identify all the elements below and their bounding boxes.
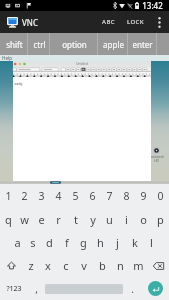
staticText: f <box>65 235 69 250</box>
button[interactable]: 1 <box>0 184 16 208</box>
button[interactable]: u <box>101 208 118 231</box>
button[interactable]: More options <box>152 11 167 33</box>
button[interactable]: 0 <box>152 184 169 208</box>
staticText: LOCK <box>127 18 144 26</box>
button[interactable]: 2 <box>16 184 33 208</box>
button[interactable]: r <box>50 208 67 231</box>
button[interactable]: 3 <box>33 184 50 208</box>
staticText: Untitled <box>76 62 88 66</box>
staticText: e <box>38 212 45 227</box>
staticText: 5 <box>72 189 79 203</box>
button[interactable]: d <box>41 231 58 254</box>
staticText: HD <box>154 159 159 163</box>
staticText: enter <box>132 39 153 50</box>
button[interactable]: k <box>126 231 143 254</box>
staticText: Help <box>2 55 12 61</box>
staticText: l <box>150 235 153 250</box>
button[interactable]: b <box>93 254 111 277</box>
staticText: x <box>45 258 51 273</box>
staticText: 8 <box>123 189 130 203</box>
staticText: 2 <box>21 189 28 203</box>
staticText: i <box>125 212 128 227</box>
button[interactable]: f <box>58 231 75 254</box>
button[interactable]: 8 <box>118 184 135 208</box>
button[interactable]: a <box>9 231 25 254</box>
staticText: p <box>157 212 164 227</box>
button[interactable]: option <box>50 33 98 55</box>
staticText: 1 <box>5 189 12 203</box>
button[interactable]: w <box>16 208 33 231</box>
button[interactable]: m <box>129 254 147 277</box>
button[interactable]: c <box>57 254 75 277</box>
button[interactable]: , <box>27 277 45 300</box>
button[interactable]: o <box>135 208 152 231</box>
staticText: u <box>106 212 113 227</box>
button[interactable]: g <box>75 231 92 254</box>
button[interactable]: 5 <box>67 184 84 208</box>
staticText: g <box>80 235 87 250</box>
staticText: w <box>20 212 29 227</box>
button[interactable]: x <box>39 254 57 277</box>
button[interactable]: v <box>75 254 93 277</box>
button[interactable]: LOCK <box>124 13 147 31</box>
staticText: b <box>99 258 106 273</box>
button[interactable]: 6 <box>84 184 101 208</box>
staticText: 6 <box>89 189 96 203</box>
button[interactable]: ?123 <box>0 277 27 300</box>
button[interactable]: ABC <box>99 13 118 31</box>
staticText: j <box>116 235 119 250</box>
staticText: z <box>28 258 34 273</box>
button[interactable]: 7 <box>101 184 118 208</box>
button[interactable]: 9 <box>135 184 152 208</box>
staticText: q <box>5 212 12 227</box>
button[interactable]: . <box>123 277 141 300</box>
staticText: apple <box>103 39 124 50</box>
staticText: 9 <box>140 189 147 203</box>
button[interactable]: l <box>143 231 160 254</box>
staticText: 4 <box>55 189 62 203</box>
staticText: r <box>56 212 61 227</box>
button[interactable]: ctrl <box>28 33 50 55</box>
staticText: ?123 <box>6 284 22 294</box>
staticText: shift <box>6 39 23 50</box>
staticText: t <box>74 212 78 227</box>
staticText: Macintosh <box>148 155 164 159</box>
button[interactable]: z <box>22 254 39 277</box>
staticText: c <box>63 258 69 273</box>
button[interactable]: Shift <box>0 254 22 277</box>
button[interactable]: enter <box>128 33 157 55</box>
staticText: sadg <box>14 81 23 86</box>
button[interactable]: apple <box>98 33 128 55</box>
staticText: . <box>131 282 134 296</box>
button[interactable]: n <box>111 254 129 277</box>
staticText: v <box>81 258 87 273</box>
button[interactable]: shift <box>0 33 28 55</box>
button[interactable]: 4 <box>50 184 67 208</box>
button[interactable]: h <box>92 231 109 254</box>
staticText: ctrl <box>33 39 46 50</box>
button[interactable]: y <box>84 208 101 231</box>
staticText: 0 <box>157 189 164 203</box>
button[interactable]: s <box>25 231 41 254</box>
staticText: 3 <box>38 189 45 203</box>
staticText: s <box>30 235 36 250</box>
button[interactable]: Enter <box>148 281 163 296</box>
button[interactable]: p <box>152 208 169 231</box>
staticText: y <box>90 212 96 227</box>
button[interactable]: i <box>118 208 135 231</box>
staticText: ABC <box>102 18 115 26</box>
staticText: m <box>133 258 144 273</box>
button[interactable]: Backspace <box>147 254 169 277</box>
staticText: 13:42 <box>142 0 163 11</box>
staticText: o <box>140 212 147 227</box>
staticText: option <box>62 39 87 50</box>
button[interactable]: e <box>33 208 50 231</box>
staticText: 7 <box>106 189 113 203</box>
button[interactable]: q <box>0 208 16 231</box>
button[interactable]: t <box>67 208 84 231</box>
staticText: d <box>46 235 53 250</box>
staticText: h <box>97 235 104 250</box>
button[interactable]: j <box>109 231 126 254</box>
staticText: a <box>14 235 21 250</box>
